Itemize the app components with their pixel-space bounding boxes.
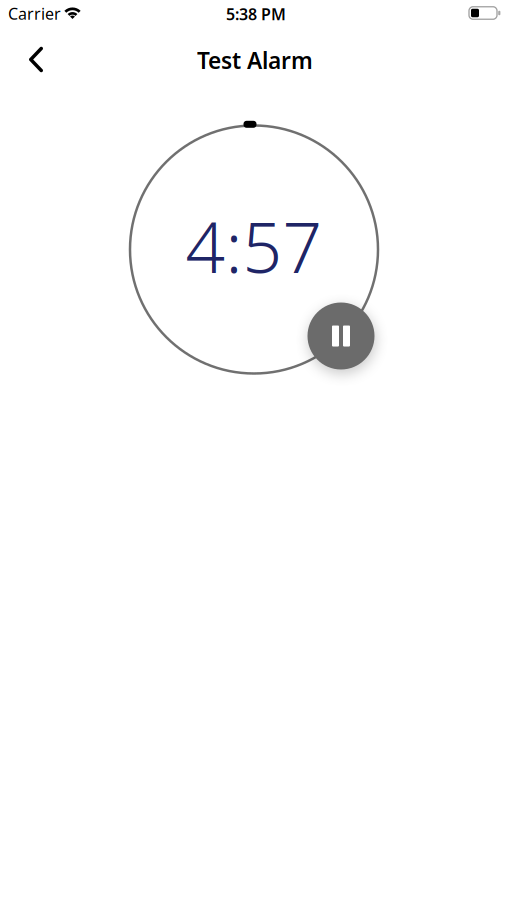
staticText: Test Alarm: [197, 45, 313, 75]
button[interactable]: Pause: [307, 302, 374, 369]
button[interactable]: Back: [17, 38, 55, 80]
staticText: Carrier: [8, 3, 61, 24]
staticText: 4:57: [185, 200, 322, 292]
staticText: 5:38 PM: [226, 3, 286, 25]
